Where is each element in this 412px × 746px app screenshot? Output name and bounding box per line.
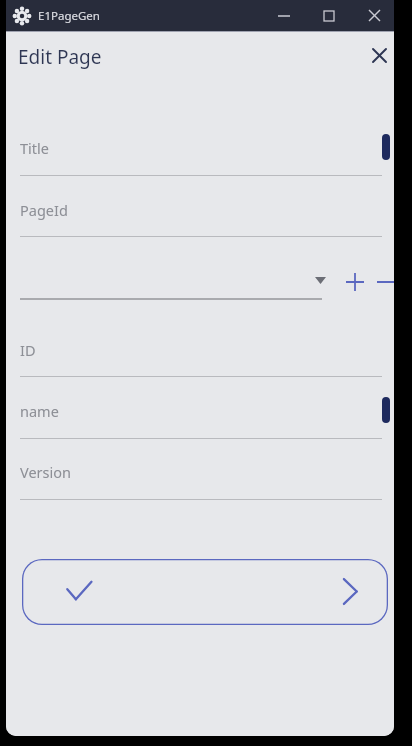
staticText: E1PageGen xyxy=(38,8,100,24)
button[interactable]: Title xyxy=(14,132,388,181)
button[interactable]: PageId xyxy=(14,194,388,242)
button[interactable]: Minimize xyxy=(264,0,304,31)
button[interactable]: Remove xyxy=(370,266,394,298)
button[interactable]: Confirm xyxy=(22,559,388,625)
button[interactable]: ID xyxy=(14,334,388,382)
button[interactable]: Close xyxy=(364,40,394,70)
staticText: Title xyxy=(20,138,49,158)
button[interactable]: Add xyxy=(339,266,371,298)
other: Confirm xyxy=(66,580,92,602)
staticText: Version xyxy=(20,462,71,482)
staticText: PageId xyxy=(20,200,68,220)
button[interactable]: name xyxy=(14,395,388,444)
button[interactable]: Select option xyxy=(20,260,330,306)
staticText: ID xyxy=(20,340,36,360)
button[interactable]: Close window xyxy=(354,0,394,31)
other: Next xyxy=(342,578,358,605)
button[interactable]: Maximize xyxy=(309,0,349,31)
button[interactable]: Version xyxy=(14,456,388,505)
staticText: name xyxy=(20,401,59,421)
staticText: Edit Page xyxy=(18,44,102,70)
